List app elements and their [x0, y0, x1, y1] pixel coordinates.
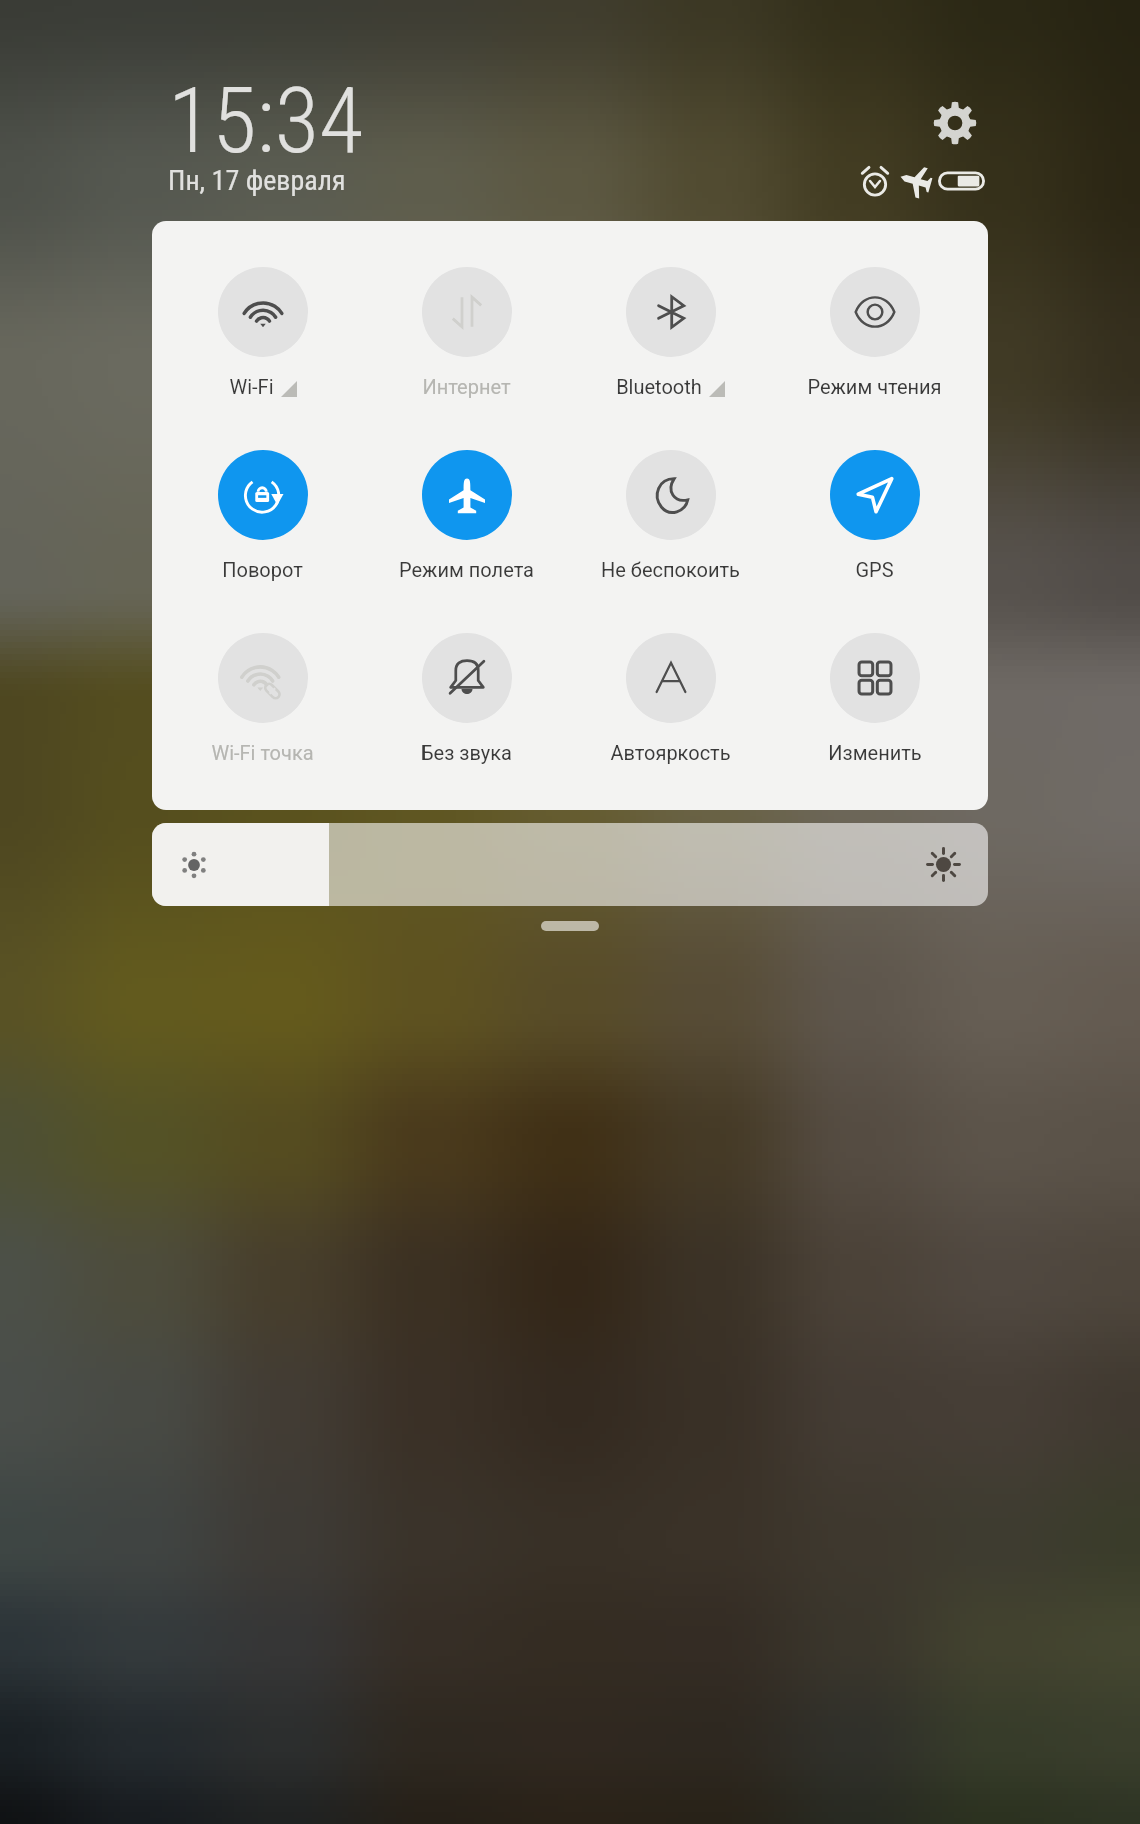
button[interactable]: Изменить	[770, 609, 979, 785]
button[interactable]: Режим чтения	[770, 243, 979, 419]
staticText: 15:34	[168, 68, 364, 175]
button[interactable]: GPS	[770, 426, 979, 602]
staticText: GPS	[855, 558, 894, 581]
staticText: Без звука	[421, 741, 512, 764]
staticText: Режим полета	[399, 558, 534, 581]
button[interactable]: Brightness	[152, 823, 988, 906]
staticText: Режим чтения	[807, 375, 942, 398]
staticText: Автояркость	[610, 741, 731, 764]
button[interactable]: Без звука	[362, 609, 571, 785]
staticText: Поворот	[222, 558, 303, 581]
button[interactable]: Поворот	[158, 426, 367, 602]
button[interactable]: Settings	[926, 94, 984, 152]
staticText: Изменить	[828, 741, 922, 764]
button[interactable]: Режим полета	[362, 426, 571, 602]
staticText: Не беспокоить	[601, 558, 740, 581]
button[interactable]: Автояркость	[566, 609, 775, 785]
staticText: Интернет	[422, 375, 511, 398]
staticText: Wi-Fi	[229, 375, 274, 398]
staticText: Bluetooth	[616, 375, 702, 398]
button[interactable]: Wi-Fi точка	[158, 609, 367, 785]
button[interactable]: Wi-Fi	[158, 243, 367, 419]
staticText: Wi-Fi точка	[211, 741, 314, 764]
button[interactable]: Не беспокоить	[566, 426, 775, 602]
button[interactable]: Bluetooth	[566, 243, 775, 419]
staticText: Пн, 17 февраля	[168, 164, 346, 197]
button[interactable]: Интернет	[362, 243, 571, 419]
